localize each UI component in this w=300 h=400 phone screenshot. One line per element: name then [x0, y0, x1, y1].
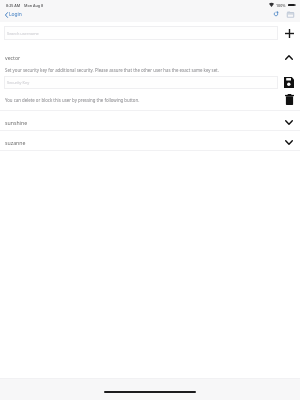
- button[interactable]: Delete user: [278, 89, 300, 110]
- button[interactable]: Login: [3, 9, 24, 20]
- staticText: Security Key: [7, 80, 30, 85]
- staticText: You can delete or block this user by pre…: [5, 97, 140, 103]
- button[interactable]: vector: [0, 41, 300, 73]
- staticText: 8:25 AM: [6, 3, 21, 8]
- staticText: Mon Aug 8: [24, 3, 44, 8]
- staticText: vector: [5, 54, 21, 61]
- button[interactable]: Save: [281, 76, 297, 89]
- staticText: Set your security key for additional sec…: [5, 67, 219, 73]
- button[interactable]: Add user: [281, 26, 297, 40]
- staticText: sunshine: [5, 119, 28, 126]
- button[interactable]: Search username: [4, 26, 278, 40]
- button[interactable]: Security Key: [4, 76, 278, 89]
- staticText: 100%: [276, 3, 286, 8]
- staticText: Login: [9, 11, 22, 18]
- button[interactable]: sunshine: [0, 111, 300, 130]
- staticText: Search username: [7, 31, 39, 36]
- button[interactable]: Archive: [284, 8, 297, 20]
- button[interactable]: suzanne: [0, 131, 300, 150]
- staticText: suzanne: [5, 139, 26, 146]
- button[interactable]: Refresh: [270, 8, 283, 20]
